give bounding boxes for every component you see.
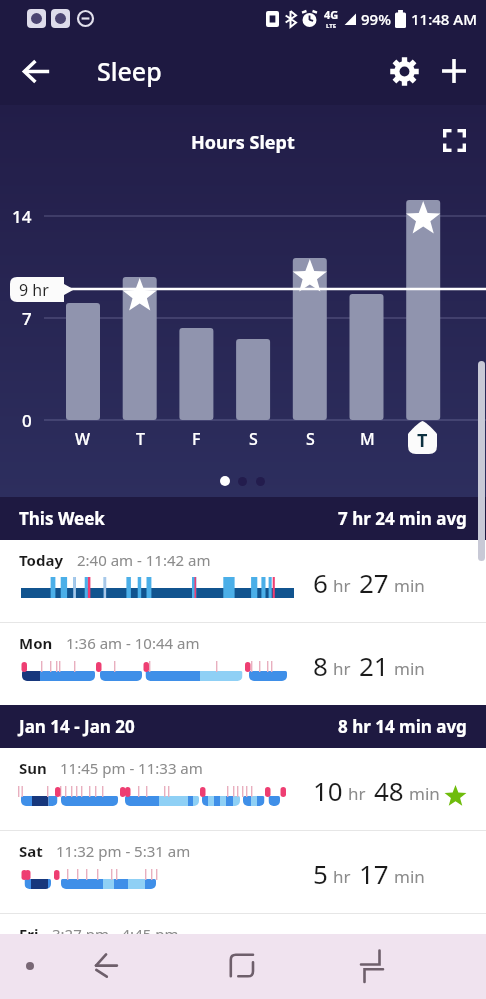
- staticText: 1:36 am - 10:44 am: [66, 633, 200, 653]
- staticText: 21: [359, 648, 389, 683]
- staticText: F: [192, 428, 201, 450]
- button[interactable]: Back: [11, 46, 61, 96]
- staticText: 8: [313, 648, 328, 683]
- staticText: T: [417, 428, 428, 453]
- staticText: 17: [359, 856, 389, 891]
- staticText: Sun: [19, 758, 47, 778]
- staticText: 2:40 am - 11:42 am: [77, 550, 211, 570]
- staticText: 14: [12, 205, 32, 228]
- staticText: 3:27 pm - 4:45 pm: [52, 924, 179, 944]
- button[interactable]: Today: [0, 540, 486, 622]
- staticText: hr: [333, 574, 351, 597]
- staticText: hr: [333, 657, 351, 680]
- staticText: 11:32 pm - 5:31 am: [56, 841, 191, 861]
- staticText: hr: [333, 865, 351, 888]
- staticText: Sleep: [97, 54, 162, 88]
- staticText: This Week: [19, 507, 105, 530]
- staticText: S: [249, 428, 258, 450]
- button[interactable]: Sun: [0, 748, 486, 830]
- staticText: Jan 14 - Jan 20: [19, 715, 135, 738]
- staticText: 6: [313, 565, 328, 600]
- button[interactable]: Recents: [352, 945, 392, 985]
- staticText: 10: [313, 773, 343, 808]
- button[interactable]: Back: [80, 943, 122, 985]
- staticText: 0: [22, 409, 32, 432]
- staticText: S: [306, 428, 315, 450]
- staticText: Today: [19, 550, 64, 570]
- staticText: 5: [313, 856, 328, 891]
- button[interactable]: Fri: [0, 914, 486, 996]
- staticText: T: [136, 428, 145, 450]
- staticText: W: [75, 428, 91, 450]
- button[interactable]: Sat: [0, 831, 486, 913]
- staticText: 4G: [324, 7, 339, 22]
- staticText: hr: [348, 782, 366, 805]
- staticText: M: [360, 428, 375, 450]
- staticText: min: [394, 865, 425, 888]
- staticText: LTE: [326, 22, 337, 30]
- button[interactable]: Add: [429, 46, 479, 96]
- staticText: 9 hr: [19, 279, 49, 301]
- staticText: Hours Slept: [191, 130, 295, 155]
- staticText: 27: [359, 565, 389, 600]
- staticText: 11:48 AM: [411, 9, 477, 29]
- button[interactable]: Home: [222, 945, 258, 981]
- staticText: min: [394, 657, 425, 680]
- staticText: 8 hr 14 min avg: [338, 715, 467, 738]
- button[interactable]: Jan 14 - Jan 20: [0, 705, 486, 748]
- staticText: Mon: [19, 633, 53, 653]
- staticText: min: [409, 782, 440, 805]
- button[interactable]: Mon: [0, 623, 486, 705]
- button[interactable]: Settings: [379, 46, 429, 96]
- staticText: Fri: [19, 924, 39, 944]
- staticText: 7 hr 24 min avg: [338, 507, 467, 530]
- button[interactable]: Fullscreen: [431, 117, 477, 163]
- staticText: min: [394, 574, 425, 597]
- staticText: Sat: [19, 841, 43, 861]
- staticText: 11:45 pm - 11:33 am: [60, 758, 203, 778]
- staticText: 99%: [361, 9, 391, 29]
- button[interactable]: This Week: [0, 497, 486, 540]
- staticText: 18: [359, 939, 389, 974]
- staticText: 48: [374, 773, 404, 808]
- button[interactable]: Show keyboard: [13, 949, 46, 982]
- staticText: 7: [22, 307, 32, 330]
